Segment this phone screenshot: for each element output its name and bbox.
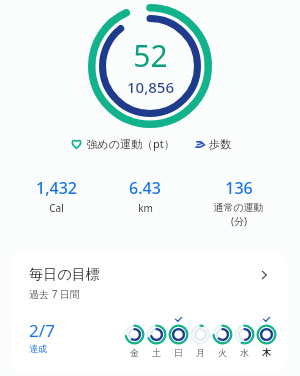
other: Open daily goal: [255, 266, 273, 284]
staticText: 2/7: [29, 319, 55, 342]
button[interactable]: 水: [233, 315, 255, 358]
button[interactable]: Activity rings: [87, 3, 213, 129]
staticText: 歩数: [209, 137, 231, 151]
button[interactable]: 歩数: [191, 133, 233, 155]
staticText: 6.43: [129, 177, 161, 199]
button[interactable]: 月: [189, 315, 211, 358]
button[interactable]: 毎日の目標: [13, 252, 287, 372]
staticText: 通常の運動: [213, 201, 264, 214]
staticText: 月: [196, 347, 205, 358]
staticText: km: [138, 201, 153, 215]
button[interactable]: 木: [255, 315, 277, 358]
staticText: 達成: [29, 343, 47, 354]
button[interactable]: 土: [145, 315, 167, 358]
button[interactable]: 火: [211, 315, 233, 358]
button[interactable]: 強めの運動（pt）: [68, 132, 177, 155]
staticText: 火: [218, 347, 227, 358]
staticText: 10,856: [127, 77, 174, 97]
button[interactable]: 日: [167, 315, 189, 358]
staticText: 52: [133, 35, 168, 76]
staticText: 1,432: [36, 177, 77, 199]
staticText: 過去 7 日間: [29, 287, 80, 301]
staticText: 毎日の目標: [29, 266, 100, 284]
staticText: 136: [225, 177, 253, 199]
staticText: 金: [130, 347, 139, 358]
staticText: 土: [152, 347, 161, 358]
button[interactable]: 金: [123, 315, 145, 358]
staticText: (分): [231, 214, 247, 228]
staticText: 日: [174, 347, 183, 358]
staticText: 強めの運動（pt）: [86, 136, 175, 151]
staticText: 木: [262, 347, 271, 358]
staticText: Cal: [49, 201, 64, 215]
staticText: 水: [240, 347, 249, 358]
